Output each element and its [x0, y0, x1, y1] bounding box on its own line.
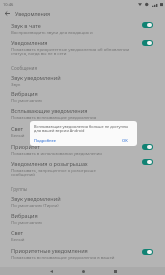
- button[interactable]: Звук в чате: [0, 20, 165, 37]
- staticText: Белый: [11, 132, 136, 138]
- staticText: Приоритет: [11, 143, 40, 150]
- button[interactable]: Уведомления: [0, 37, 165, 59]
- button[interactable]: Home: [73, 267, 93, 275]
- staticText: Свет: [11, 125, 24, 132]
- button[interactable]: Свет: [0, 227, 165, 244]
- staticText: Звук: [11, 81, 136, 87]
- staticText: По умолчанию: [11, 97, 136, 103]
- staticText: Показывать приоритетные уведомления об о…: [11, 46, 136, 57]
- staticText: Сообщения: [11, 65, 38, 71]
- button[interactable]: Приоритет: [142, 144, 153, 150]
- staticText: Всплывающие уведомления: [11, 107, 88, 114]
- staticText: 10:46: [3, 2, 14, 7]
- staticText: Уведомления: [11, 39, 48, 46]
- staticText: Звук уведомлений: [11, 74, 61, 81]
- button[interactable]: Recent apps: [105, 267, 125, 275]
- button[interactable]: Уведомления: [142, 40, 153, 46]
- staticText: Свет: [11, 229, 24, 236]
- staticText: Группы: [11, 186, 28, 192]
- staticText: Показывать всплывающие уведомления: [11, 114, 136, 120]
- button[interactable]: Звук в чате: [142, 22, 153, 28]
- staticText: Вибрация: [11, 212, 38, 219]
- staticText: Звук уведомлений: [11, 195, 61, 202]
- button[interactable]: Всплывающие уведомления: [0, 105, 165, 122]
- button[interactable]: Приоритетные уведомления: [142, 249, 153, 255]
- staticText: По умолчанию (Тирли): [11, 202, 136, 208]
- button[interactable]: Приоритетные уведомления: [0, 245, 165, 262]
- button[interactable]: Звук уведомлений: [0, 72, 165, 89]
- staticText: Вибрация: [11, 90, 38, 97]
- button[interactable]: Back: [3, 9, 12, 18]
- button[interactable]: Вибрация: [0, 210, 165, 227]
- staticText: Звук в чате: [11, 22, 41, 29]
- button[interactable]: Уведомления о розыгрышах: [142, 159, 153, 165]
- button[interactable]: OK: [122, 138, 128, 143]
- button[interactable]: Back: [41, 267, 61, 275]
- button[interactable]: Вибрация: [0, 88, 165, 105]
- staticText: Белый: [11, 236, 136, 242]
- button[interactable]: Свет: [0, 123, 165, 140]
- staticText: Приоритетные уведомления: [11, 247, 88, 254]
- staticText: Показывать всплывающие уведомления в ваш…: [11, 254, 119, 260]
- button[interactable]: Звук уведомлений: [0, 193, 165, 210]
- button[interactable]: Приоритет: [0, 141, 165, 158]
- button[interactable]: Уведомления о розыгрышах: [0, 158, 165, 180]
- staticText: Всплывающие уведомления больше не доступ…: [34, 124, 134, 134]
- staticText: Показывать в использовании уведомления: [11, 150, 116, 156]
- staticText: Воспроизводить звуки для входящих и исхо…: [11, 29, 116, 35]
- staticText: Показывать, запрещенное о розыгрыше сооб…: [11, 167, 103, 178]
- button[interactable]: Подробнее: [34, 138, 57, 143]
- staticText: Уведомления о розыгрышах: [11, 160, 88, 167]
- staticText: Уведомления: [15, 10, 51, 17]
- staticText: По умолчанию: [11, 219, 136, 225]
